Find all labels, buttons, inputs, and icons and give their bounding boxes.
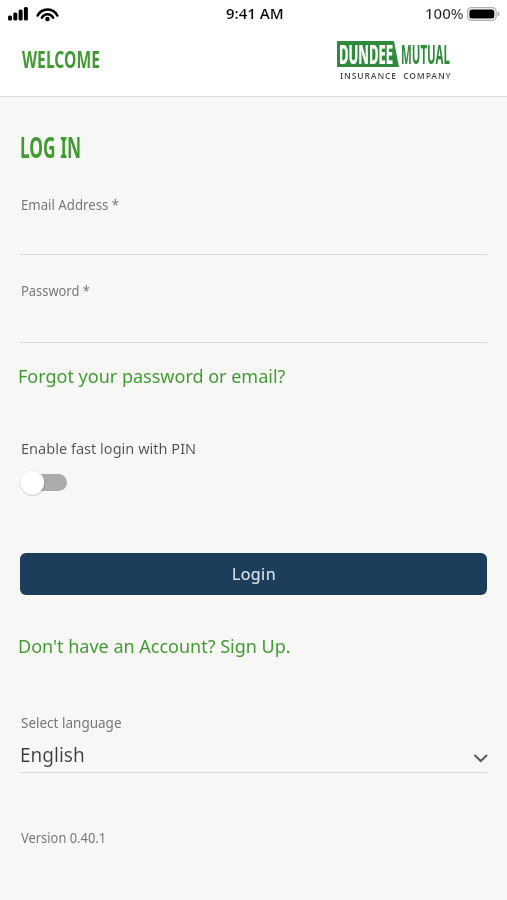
staticText: Password *	[21, 280, 91, 300]
staticText: Version 0.40.1	[21, 827, 107, 847]
button[interactable]: Login	[20, 553, 487, 595]
staticText: Forgot your password or email?	[18, 364, 286, 389]
staticText: Enable fast login with PIN	[21, 438, 197, 458]
button[interactable]: Forgot your password or email?	[18, 364, 286, 389]
button[interactable]: Don't have an Account? Sign Up.	[18, 634, 291, 659]
staticText: Email Address *	[21, 194, 120, 214]
staticText: DUNDEE	[339, 36, 393, 71]
button[interactable]	[20, 468, 70, 496]
staticText: 100%	[425, 3, 464, 23]
staticText: Don't have an Account? Sign Up.	[18, 634, 291, 659]
button[interactable]: English	[20, 738, 487, 772]
staticText: 9:41 AM	[226, 3, 284, 23]
staticText: Select language	[21, 712, 122, 732]
staticText: LOG IN	[20, 128, 81, 166]
staticText: Login	[232, 563, 276, 585]
staticText: INSURANCE COMPANY	[340, 69, 452, 81]
staticText: WELCOME	[22, 43, 100, 74]
staticText: English	[20, 742, 85, 768]
staticText: MUTUAL	[401, 36, 450, 71]
